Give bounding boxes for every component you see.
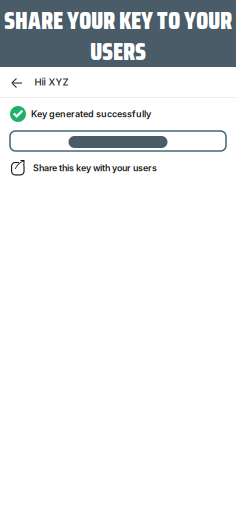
button[interactable]: Back	[0, 67, 34, 97]
staticText: SHARE YOUR KEY TO YOUR	[4, 1, 232, 40]
staticText: Hii XYZ	[34, 76, 68, 88]
staticText: Share this key with your users	[33, 163, 157, 173]
staticText: USERS	[90, 32, 146, 71]
button[interactable]: Share this key with your users	[0, 158, 236, 176]
staticText: Key generated successfully	[31, 108, 151, 119]
